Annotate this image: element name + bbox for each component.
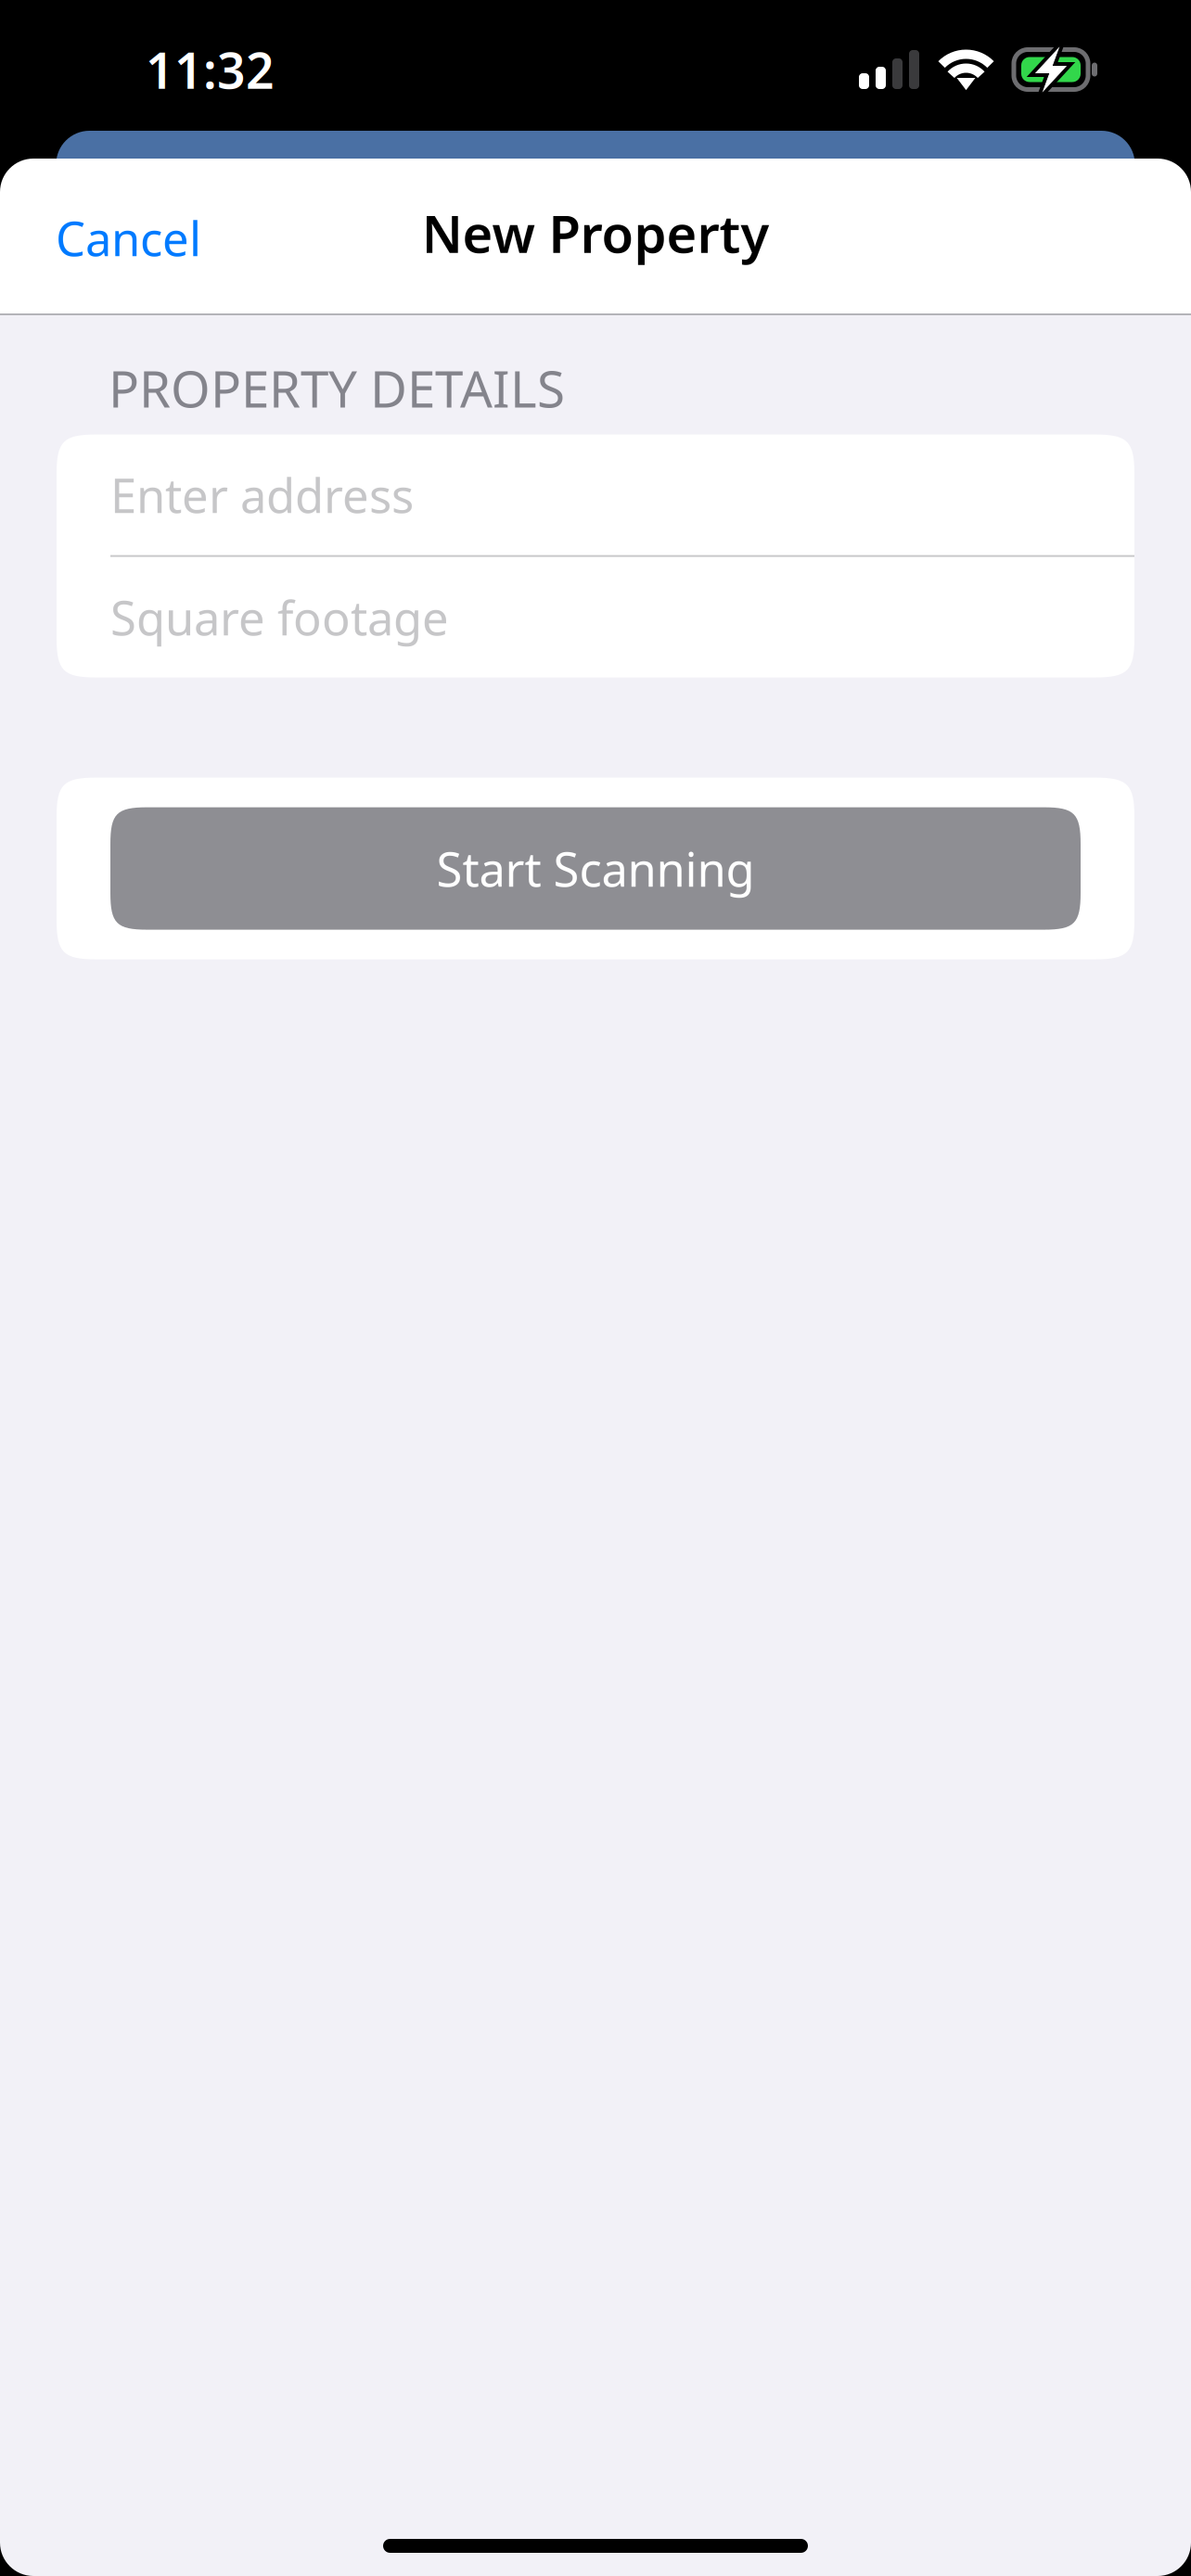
staticText: Square footage [110,586,449,648]
staticText: Start Scanning [436,837,755,900]
staticText: Enter address [110,464,414,526]
staticText: PROPERTY DETAILS [109,354,565,422]
button[interactable]: Cancel [37,184,220,291]
staticText: New Property [422,198,769,267]
staticText: Cancel [56,207,201,269]
button[interactable]: Enter address [57,435,1134,555]
button[interactable]: Square footage [57,557,1134,677]
staticText: 11:32 [146,37,275,102]
button[interactable]: Start Scanning [110,807,1081,930]
